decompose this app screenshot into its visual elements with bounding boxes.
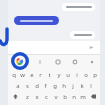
button[interactable] [14, 16, 59, 25]
button[interactable]: d [32, 80, 41, 91]
button[interactable]: g [50, 80, 59, 91]
button[interactable] [70, 31, 95, 39]
staticText: t [48, 71, 51, 79]
button[interactable]: t [45, 69, 54, 80]
button[interactable]: n [69, 91, 78, 102]
button[interactable]: z [22, 91, 32, 102]
staticText: k [80, 82, 84, 90]
staticText: n [72, 93, 76, 101]
button[interactable]: Google search [8, 55, 31, 68]
button[interactable]: q [9, 69, 18, 80]
button[interactable]: GIF [49, 55, 66, 68]
staticText: q [12, 71, 16, 79]
staticText: u [66, 71, 70, 79]
button[interactable]: l [86, 80, 95, 91]
staticText: h [62, 82, 66, 90]
button[interactable]: Emoji [66, 55, 83, 68]
button[interactable]: e [27, 69, 36, 80]
staticText: x [35, 93, 39, 101]
button[interactable]: w [18, 69, 27, 80]
button[interactable] [62, 3, 95, 11]
button[interactable]: v [51, 91, 60, 102]
button[interactable]: u [63, 69, 72, 80]
button[interactable]: a [13, 80, 23, 91]
staticText: r [39, 71, 42, 79]
staticText: j [72, 82, 74, 90]
button[interactable]: y [54, 69, 63, 80]
staticText: c [45, 93, 48, 101]
button[interactable]: Send message [8, 41, 100, 54]
button[interactable]: h [59, 80, 68, 91]
button[interactable]: Google key highlighted [11, 52, 29, 70]
button[interactable]: b [60, 91, 69, 102]
button[interactable]: s [23, 80, 32, 91]
staticText: i [76, 71, 78, 79]
staticText: o [84, 71, 88, 79]
staticText: e [30, 71, 34, 79]
staticText: b [63, 93, 67, 101]
button[interactable]: o [81, 69, 90, 80]
staticText: p [93, 71, 97, 79]
staticText: w [20, 71, 25, 79]
button[interactable]: Backspace [87, 91, 100, 102]
button[interactable]: x [32, 91, 42, 102]
staticText: a [16, 82, 20, 90]
staticText: f [44, 82, 47, 90]
button[interactable]: c [42, 91, 51, 102]
button[interactable]: j [68, 80, 77, 91]
button[interactable]: p [90, 69, 99, 80]
button[interactable]: r [36, 69, 45, 80]
button[interactable]: Send message [87, 43, 96, 52]
staticText: z [26, 93, 29, 101]
staticText: g [53, 82, 57, 90]
button[interactable]: Shift [8, 91, 22, 102]
staticText: v [54, 93, 58, 101]
staticText: y [57, 71, 61, 79]
button[interactable]: f [41, 80, 50, 91]
button[interactable]: m [78, 91, 87, 102]
button[interactable]: i [72, 69, 81, 80]
button[interactable]: Settings [83, 55, 100, 68]
staticText: d [35, 82, 39, 90]
staticText: l [90, 82, 92, 90]
button[interactable]: Stickers [31, 55, 49, 68]
button[interactable]: k [77, 80, 86, 91]
staticText: m [80, 93, 86, 101]
staticText: s [26, 82, 29, 90]
